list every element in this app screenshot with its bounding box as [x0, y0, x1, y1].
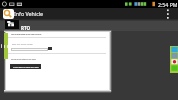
staticText: 2:54 PM [158, 1, 178, 8]
button[interactable]: More options [163, 8, 174, 19]
staticText: Enter your vehicle number [12, 43, 34, 45]
staticText: RTO [21, 25, 31, 31]
button[interactable]: Feedback [4, 33, 8, 59]
staticText: Get vehicle information on your mobile [11, 59, 36, 61]
staticText: FEEDBACK [0, 44, 12, 48]
staticText: Info Vehicle [14, 10, 44, 17]
button[interactable]: RTO logo [5, 20, 19, 29]
staticText: CLICK HERE TO FIND OUT NOW [13, 66, 39, 68]
button[interactable]: Vehicle number input [11, 48, 48, 51]
staticText: Find information about your vehicle. [11, 33, 42, 35]
button[interactable]: Share [170, 46, 178, 73]
button[interactable]: CLICK HERE TO FIND OUT NOW [10, 64, 41, 69]
